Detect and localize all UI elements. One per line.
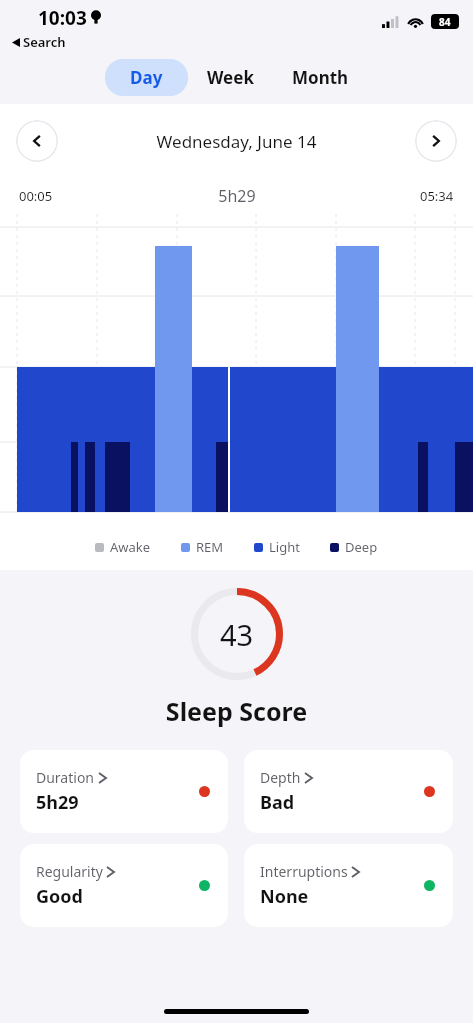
staticText: Sleep Score: [0, 694, 473, 728]
staticText: Month: [292, 66, 349, 89]
staticText: 43: [220, 615, 254, 654]
staticText: Week: [207, 66, 254, 89]
staticText: Day: [130, 66, 163, 89]
button[interactable]: Day: [105, 59, 188, 96]
button[interactable]: Next day: [415, 120, 457, 162]
staticText: Regularity: [36, 862, 103, 881]
staticText: 5h29: [218, 185, 256, 207]
staticText: 10:03: [38, 5, 87, 31]
staticText: Good: [36, 884, 83, 909]
staticText: 05:34: [420, 187, 454, 205]
staticText: Light: [269, 538, 300, 556]
button[interactable]: Month: [273, 59, 368, 96]
staticText: 5h29: [36, 790, 79, 815]
staticText: Interruptions: [260, 862, 348, 881]
button[interactable]: Week: [188, 59, 273, 96]
button[interactable]: Duration: [20, 750, 228, 833]
staticText: 84: [439, 15, 451, 29]
staticText: REM: [196, 538, 224, 556]
staticText: 00:05: [19, 187, 53, 205]
staticText: Wednesday, June 14: [58, 130, 415, 153]
staticText: None: [260, 884, 309, 909]
staticText: Duration: [36, 768, 95, 787]
staticText: Search: [23, 33, 66, 51]
staticText: Bad: [260, 790, 295, 815]
button[interactable]: Previous day: [16, 120, 58, 162]
button[interactable]: Interruptions: [244, 844, 453, 927]
staticText: Depth: [260, 768, 301, 787]
staticText: Deep: [345, 538, 378, 556]
button[interactable]: Depth: [244, 750, 453, 833]
button[interactable]: Regularity: [20, 844, 228, 927]
staticText: Awake: [110, 538, 151, 556]
